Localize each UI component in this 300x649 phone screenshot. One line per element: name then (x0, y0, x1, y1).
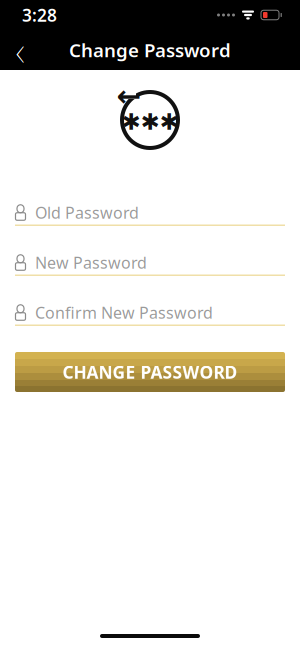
staticText: ✱✱✱ (121, 109, 178, 135)
staticText: 3:28 (22, 3, 57, 26)
staticText: Change Password (69, 38, 231, 62)
staticText: Old Password (35, 202, 139, 223)
staticText: ‹ (15, 22, 24, 78)
button[interactable]: Back (0, 30, 40, 70)
staticText: ← (116, 79, 141, 113)
staticText: Confirm New Password (35, 302, 213, 323)
staticText: CHANGE PASSWORD (62, 360, 237, 383)
staticText: New Password (35, 252, 147, 273)
button[interactable]: CHANGE PASSWORD (15, 352, 285, 392)
